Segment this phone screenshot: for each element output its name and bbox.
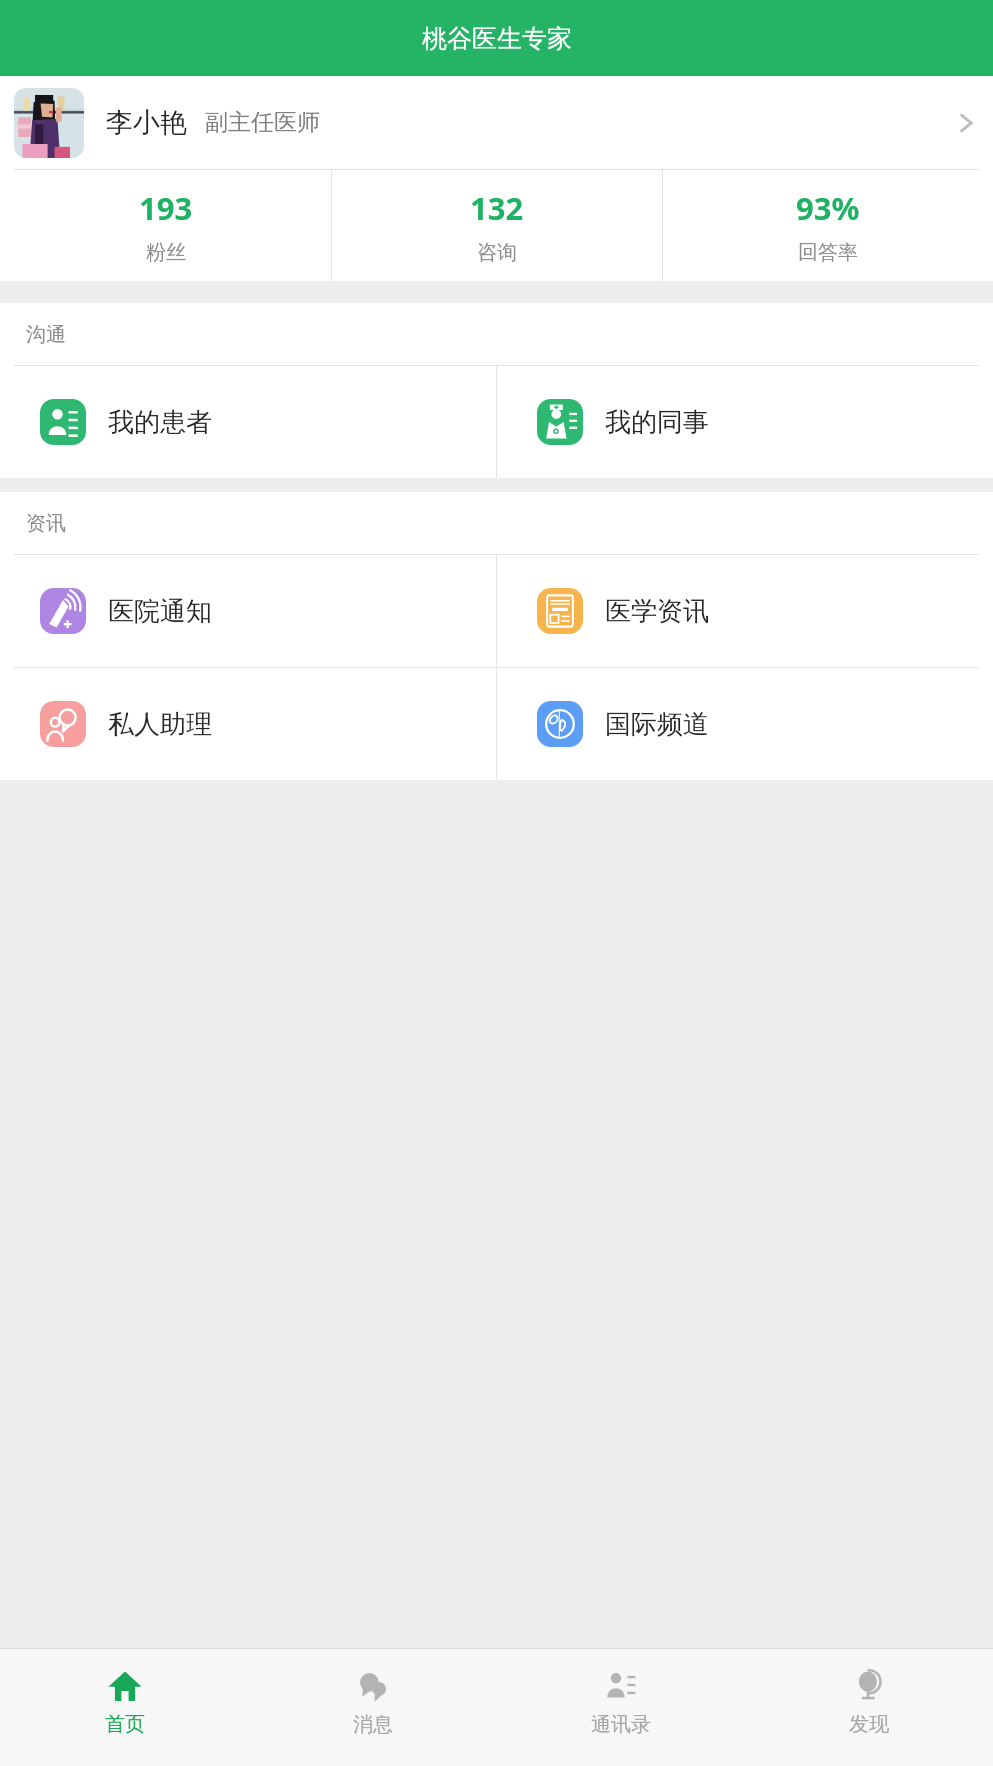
staticText: 国际频道 xyxy=(605,708,709,741)
staticText: 回答率 xyxy=(798,240,858,265)
button[interactable]: 93% xyxy=(663,170,993,281)
staticText: 资讯 xyxy=(26,511,66,536)
other: 发现 xyxy=(851,1668,887,1704)
button[interactable]: 发现 xyxy=(745,1649,993,1754)
staticText: 发现 xyxy=(849,1712,889,1737)
staticText: 粉丝 xyxy=(146,240,186,265)
staticText: 桃谷医生专家 xyxy=(422,23,572,54)
staticText: 消息 xyxy=(353,1712,393,1737)
staticText: 我的患者 xyxy=(108,406,212,439)
button[interactable]: 医院通知 xyxy=(0,555,496,667)
button[interactable]: 国际频道 xyxy=(497,668,993,780)
staticText: 医院通知 xyxy=(108,595,212,628)
staticText: 132 xyxy=(470,187,524,229)
staticText: 沟通 xyxy=(26,322,66,347)
staticText: 李小艳 xyxy=(106,106,187,140)
staticText: 咨询 xyxy=(477,240,517,265)
button[interactable]: 132 xyxy=(332,170,662,281)
staticText: 首页 xyxy=(105,1712,145,1737)
other: 查看个人资料 xyxy=(953,110,979,136)
staticText: 副主任医师 xyxy=(205,108,320,137)
button[interactable]: 李小艳 xyxy=(0,76,993,169)
button[interactable]: 首页 xyxy=(0,1649,249,1754)
other: 首页 xyxy=(107,1668,143,1704)
button[interactable]: 我的同事 xyxy=(497,366,993,478)
button[interactable]: 我的患者 xyxy=(0,366,496,478)
button[interactable]: 消息 xyxy=(249,1649,497,1754)
button[interactable]: 193 xyxy=(0,170,331,281)
staticText: 93% xyxy=(796,187,860,229)
button[interactable]: 私人助理 xyxy=(0,668,496,780)
other: 消息 xyxy=(355,1668,391,1704)
staticText: 私人助理 xyxy=(108,708,212,741)
staticText: 193 xyxy=(139,187,193,229)
button[interactable]: 医学资讯 xyxy=(497,555,993,667)
button[interactable]: 通讯录 xyxy=(497,1649,745,1754)
staticText: 我的同事 xyxy=(605,406,709,439)
other: 通讯录 xyxy=(603,1668,639,1704)
staticText: 医学资讯 xyxy=(605,595,709,628)
staticText: 通讯录 xyxy=(591,1712,651,1737)
